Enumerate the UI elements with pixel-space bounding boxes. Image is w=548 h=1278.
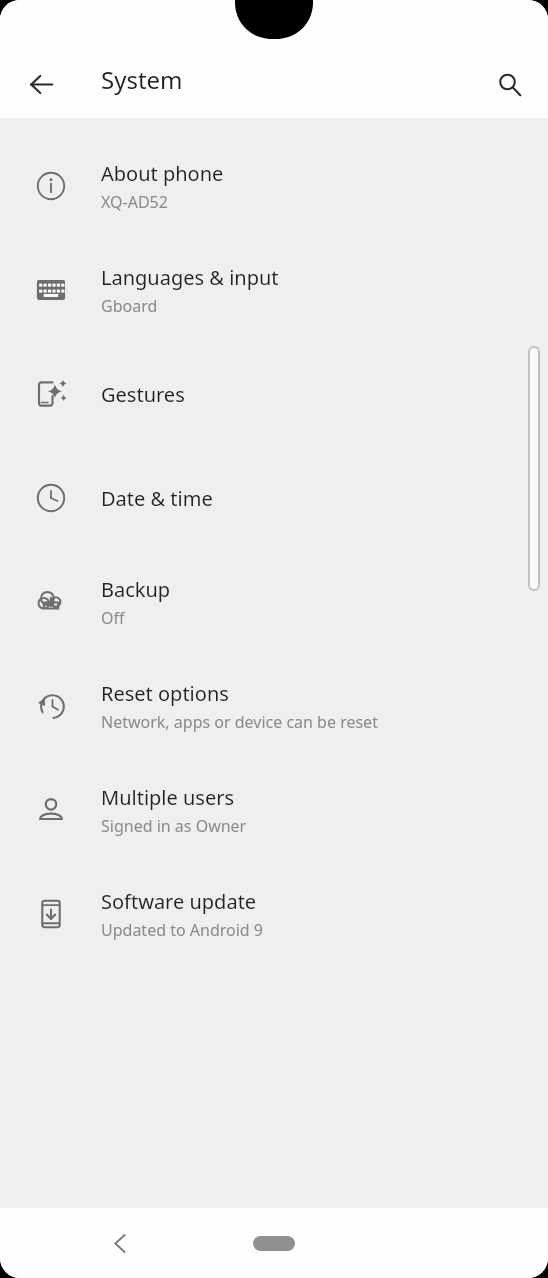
staticText: Software update — [101, 888, 257, 915]
staticText: Backup — [101, 576, 171, 603]
staticText: Languages & input — [101, 264, 279, 291]
staticText: Gestures — [101, 381, 185, 408]
button[interactable]: Date & time — [0, 446, 548, 550]
button[interactable]: Reset options — [0, 654, 548, 758]
staticText: Date & time — [101, 485, 213, 512]
button[interactable]: Gestures — [0, 342, 548, 446]
button[interactable]: Multiple users — [0, 758, 548, 862]
staticText: Reset options — [101, 680, 229, 707]
staticText: Updated to Android 9 — [101, 919, 263, 941]
button[interactable]: Home — [239, 1223, 309, 1263]
staticText: Network, apps or device can be reset — [101, 711, 378, 733]
staticText: System — [101, 63, 183, 96]
button[interactable]: Back — [92, 1215, 148, 1271]
button[interactable]: Backup — [0, 550, 548, 654]
button[interactable]: About phone — [0, 134, 548, 238]
staticText: Gboard — [101, 295, 158, 317]
staticText: Signed in as Owner — [101, 815, 247, 837]
button[interactable]: Search — [482, 57, 536, 111]
staticText: About phone — [101, 160, 224, 187]
button[interactable]: Back — [14, 57, 68, 111]
staticText: XQ-AD52 — [101, 191, 168, 213]
staticText: Off — [101, 607, 125, 629]
staticText: Multiple users — [101, 784, 235, 811]
button[interactable]: Software update — [0, 862, 548, 966]
button[interactable]: Languages & input — [0, 238, 548, 342]
